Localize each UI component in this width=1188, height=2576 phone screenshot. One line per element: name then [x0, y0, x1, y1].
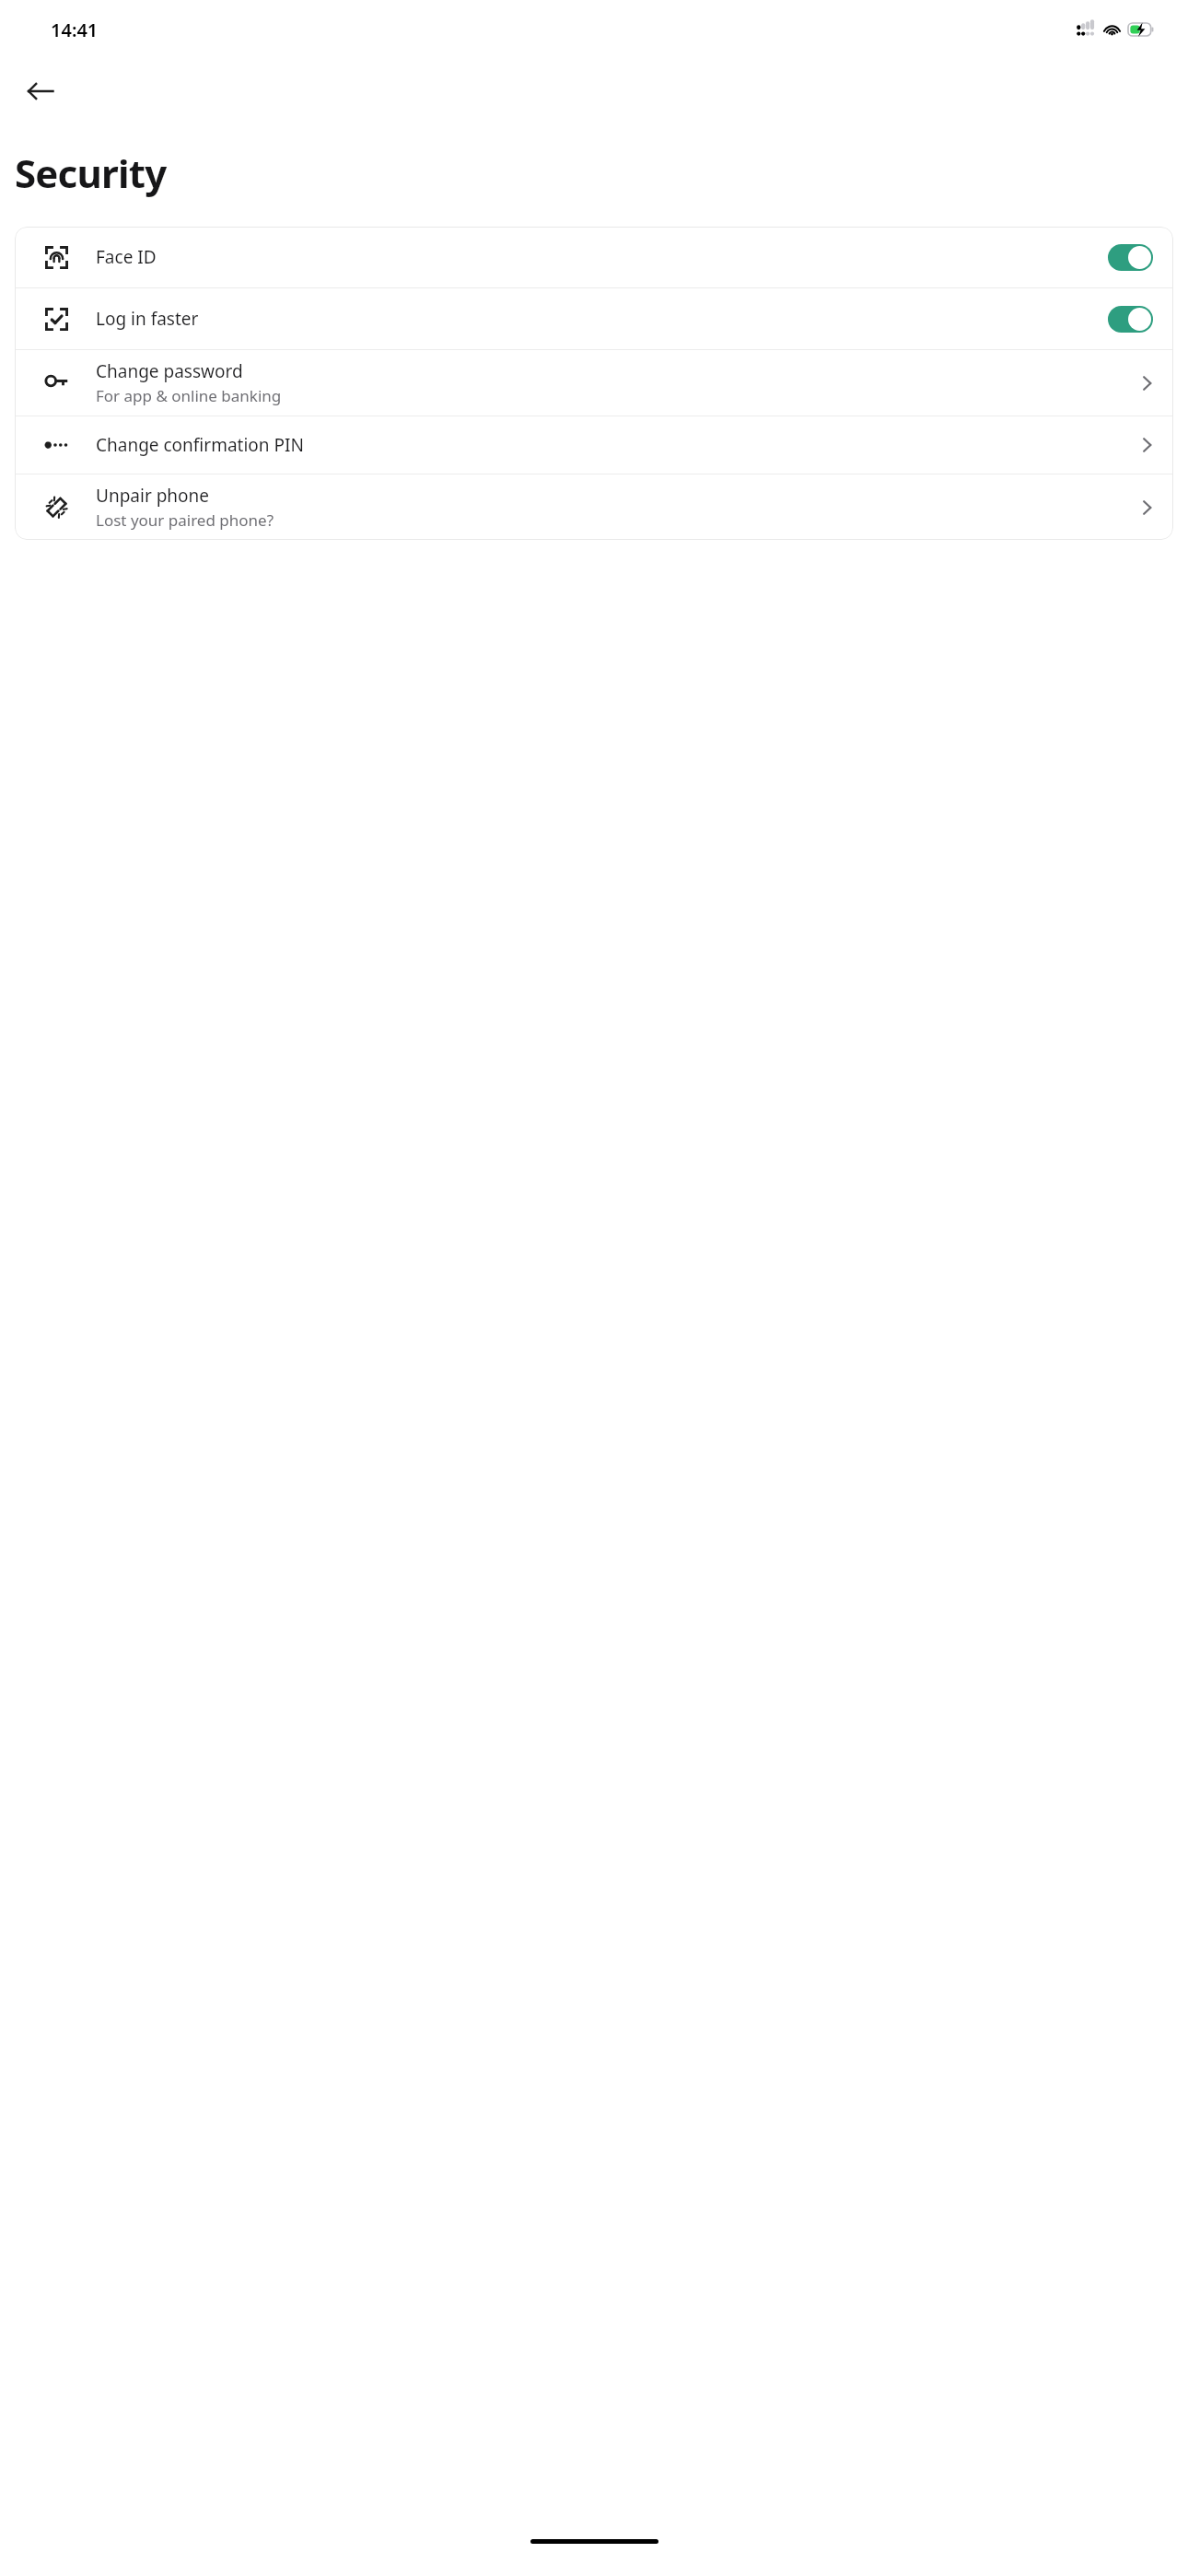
- button[interactable]: Change confirmation PIN: [15, 416, 1173, 474]
- staticText: Lost your paired phone?: [96, 509, 274, 531]
- button[interactable]: Back: [17, 67, 64, 115]
- button[interactable]: Change password: [15, 350, 1173, 416]
- staticText: 14:41: [51, 18, 99, 42]
- button[interactable]: Face ID: [15, 227, 1173, 287]
- button[interactable]: Log in faster toggle, on: [1108, 306, 1153, 333]
- staticText: Face ID: [96, 245, 1108, 269]
- button[interactable]: Face ID toggle, on: [1108, 244, 1153, 271]
- staticText: Security: [15, 146, 167, 199]
- staticText: Change confirmation PIN: [96, 433, 304, 457]
- button[interactable]: Unpair phone: [15, 474, 1173, 540]
- button[interactable]: Log in faster: [15, 288, 1173, 349]
- staticText: Change password: [96, 359, 243, 383]
- staticText: Unpair phone: [96, 484, 210, 508]
- staticText: Log in faster: [96, 307, 1108, 331]
- staticText: For app & online banking: [96, 385, 282, 406]
